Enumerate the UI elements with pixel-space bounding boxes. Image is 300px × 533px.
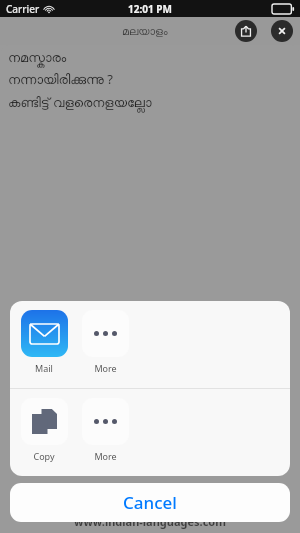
staticText: മലയാളം bbox=[122, 26, 168, 37]
button[interactable]: More bbox=[79, 398, 131, 462]
staticText: കണ്ടിട്ട് വളരെനളയല്ലോ bbox=[8, 93, 152, 111]
staticText: Mail bbox=[35, 362, 53, 374]
staticText: More bbox=[94, 362, 117, 374]
button[interactable]: Cancel bbox=[10, 483, 290, 522]
button[interactable]: Share bbox=[235, 20, 257, 42]
staticText: www.indian-languages.com bbox=[74, 514, 226, 529]
staticText: Carrier bbox=[6, 2, 40, 16]
staticText: More bbox=[94, 450, 117, 462]
staticText: Copy bbox=[33, 450, 55, 462]
staticText: നമസ്കാരം bbox=[8, 52, 67, 65]
staticText: 12:01 PM bbox=[128, 2, 172, 16]
staticText: നന്നായിരിക്കുന്നു ? bbox=[8, 70, 113, 88]
button[interactable]: Mail bbox=[18, 310, 70, 374]
button[interactable]: Copy bbox=[18, 398, 70, 462]
button[interactable]: More bbox=[79, 310, 131, 374]
staticText: Cancel bbox=[123, 491, 177, 514]
button[interactable]: Close bbox=[271, 20, 293, 42]
